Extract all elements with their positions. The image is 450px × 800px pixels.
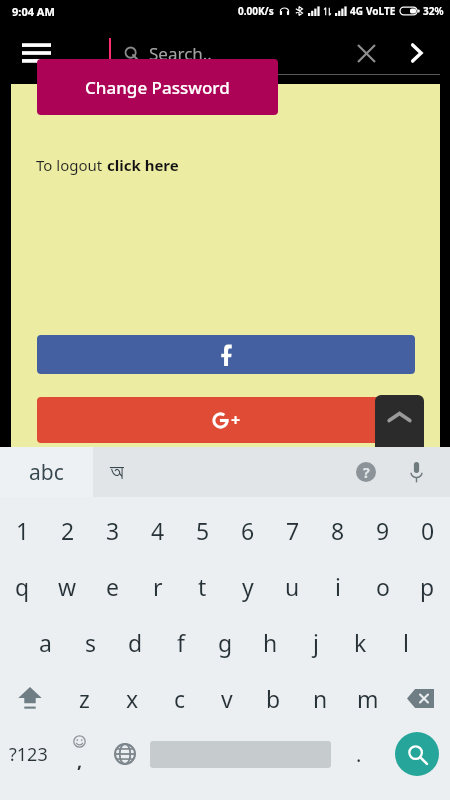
button[interactable]: b [250,670,297,726]
button[interactable]: Search.. [100,31,440,75]
button[interactable]: g [203,614,248,670]
staticText: j [313,627,319,658]
button[interactable]: Submit search [396,33,436,73]
staticText: 8 [331,515,345,546]
button[interactable]: y [225,558,270,614]
staticText: 5 [196,515,210,546]
button[interactable]: i [315,558,360,614]
staticText: 0 [421,515,435,546]
staticText: . [356,741,362,768]
staticText: m [357,683,379,714]
button[interactable]: Emoji [57,726,102,782]
button[interactable]: অ [110,447,170,497]
button[interactable]: z [60,670,108,726]
button[interactable]: Sign in with Google Plus [37,397,415,443]
staticText: u [285,571,300,602]
staticText: s [85,627,97,658]
staticText: + [231,409,241,431]
staticText: g [218,627,233,658]
button[interactable]: l [383,614,428,670]
staticText: click here [107,155,179,175]
staticText: o [376,571,390,602]
staticText: d [128,627,143,658]
button[interactable]: To logout [36,155,179,175]
button[interactable]: a [22,614,68,670]
staticText: ?123 [9,742,48,767]
button[interactable]: p [405,558,450,614]
staticText: b [266,683,281,714]
staticText: k [354,627,367,658]
button[interactable]: . [334,726,383,782]
button[interactable]: abc [0,447,93,497]
button[interactable]: Backspace [391,670,450,726]
button[interactable]: 6 [225,502,270,558]
button[interactable]: q [0,558,45,614]
button[interactable]: Voice input [394,450,438,494]
button[interactable]: Sign in with Facebook [37,335,415,374]
staticText: n [313,683,328,714]
staticText: অ [110,461,124,483]
button[interactable]: j [293,614,338,670]
button[interactable]: ?123 [0,726,57,782]
staticText: Search.. [149,42,212,65]
staticText: l [403,627,409,658]
button[interactable]: Menu [10,27,62,79]
button[interactable]: Help [344,450,388,494]
staticText: y [242,571,254,602]
staticText: r [153,571,163,602]
button[interactable]: Search [383,726,450,782]
button[interactable]: v [203,670,250,726]
staticText: x [126,683,139,714]
button[interactable]: 0 [405,502,450,558]
button[interactable]: 7 [270,502,315,558]
button[interactable]: n [297,670,344,726]
staticText: p [420,571,435,602]
button[interactable]: 2 [45,502,90,558]
button[interactable]: k [338,614,383,670]
staticText: t [198,571,207,602]
button[interactable]: f [158,614,203,670]
button[interactable]: 4 [135,502,180,558]
staticText: 4 [151,515,165,546]
button[interactable]: Space [147,726,334,782]
button[interactable]: o [360,558,405,614]
button[interactable]: Scroll to top [375,395,424,447]
button[interactable]: e [90,558,135,614]
staticText: 6 [241,515,255,546]
staticText: 7 [286,515,300,546]
staticText: abc [29,458,64,487]
button[interactable]: x [108,670,156,726]
button[interactable]: w [45,558,90,614]
staticText: 32% [423,4,444,18]
button[interactable]: Change language [102,726,147,782]
staticText: f [177,627,185,658]
button[interactable]: 1 [0,502,45,558]
button[interactable]: 8 [315,502,360,558]
button[interactable]: m [344,670,391,726]
staticText: w [58,571,77,602]
staticText: , [77,749,83,774]
staticText: i [335,571,341,602]
button[interactable]: t [180,558,225,614]
button[interactable]: d [113,614,158,670]
staticText: 3 [106,515,120,546]
staticText: q [15,571,30,602]
button[interactable]: r [135,558,180,614]
staticText: c [174,683,186,714]
button[interactable]: s [68,614,113,670]
staticText: v [221,683,233,714]
staticText: VoLTE [366,4,396,18]
button[interactable]: 3 [90,502,135,558]
button[interactable]: Shift [0,670,60,726]
button[interactable]: 5 [180,502,225,558]
button[interactable]: h [248,614,293,670]
button[interactable]: u [270,558,315,614]
staticText: 0.00K/s [238,4,274,18]
button[interactable]: c [156,670,203,726]
staticText: 2 [61,515,75,546]
staticText: To logout [36,155,107,175]
staticText: z [79,683,90,714]
button[interactable]: Clear [346,33,386,73]
button[interactable]: Change Password [37,59,278,115]
button[interactable]: 9 [360,502,405,558]
